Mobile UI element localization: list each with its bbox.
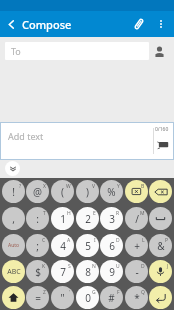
staticText: Compose [22, 17, 72, 32]
button[interactable]: sym [125, 180, 148, 203]
button[interactable]: 0 [76, 286, 99, 309]
button[interactable]: 2 [76, 207, 99, 230]
button[interactable]: More options [151, 14, 171, 34]
staticText: V [92, 183, 96, 190]
staticText: ? [19, 183, 22, 190]
button[interactable]: # [100, 286, 123, 309]
button[interactable]: Back [0, 13, 22, 35]
button[interactable]: 7 [51, 260, 74, 283]
staticText: T [43, 210, 46, 217]
staticText: S [68, 263, 71, 270]
button[interactable]: auto [2, 234, 25, 257]
button[interactable]: ( [51, 180, 74, 203]
staticText: D [116, 237, 120, 244]
button[interactable]: ABC [2, 260, 25, 283]
staticText: ! [12, 185, 15, 199]
button[interactable]: & [149, 234, 172, 257]
staticText: A [67, 237, 71, 244]
button[interactable]: / [125, 207, 148, 230]
staticText: # [108, 291, 115, 305]
staticText: 8 [85, 265, 91, 279]
staticText: 6 [109, 239, 115, 253]
button[interactable]: 4 [51, 234, 74, 257]
staticText: & [157, 239, 165, 253]
staticText: / [135, 212, 139, 226]
button[interactable]: , [2, 207, 25, 230]
button[interactable]: + [125, 234, 148, 257]
staticText: 5 [85, 239, 91, 253]
button[interactable]: Collapse [5, 161, 20, 176]
staticText: " [60, 291, 65, 305]
staticText: 0 [85, 291, 91, 305]
staticText: 9 [109, 265, 115, 279]
staticText: P [165, 237, 169, 244]
staticText: ) [86, 185, 89, 199]
staticText: ABC [7, 267, 21, 277]
button[interactable]: : [26, 207, 49, 230]
button[interactable]: ! [2, 180, 25, 203]
staticText: F [117, 289, 120, 296]
button[interactable]: Attach [127, 12, 151, 36]
staticText: Y [117, 183, 120, 190]
staticText: E [93, 210, 96, 217]
button[interactable]: 3 [100, 207, 123, 230]
button[interactable]: 9 [100, 260, 123, 283]
button[interactable]: space [149, 207, 172, 230]
button[interactable]: % [100, 180, 123, 203]
button[interactable]: = [26, 286, 49, 309]
button[interactable]: 8 [76, 260, 99, 283]
staticText: ; [36, 239, 39, 253]
button[interactable]: - [125, 260, 148, 283]
staticText: $ [35, 265, 41, 279]
staticText: L [142, 237, 145, 244]
staticText: = [35, 291, 41, 305]
button[interactable]: * [125, 286, 148, 309]
staticText: D [141, 263, 145, 270]
staticText: * [134, 291, 140, 305]
staticText: Auto [8, 242, 20, 249]
staticText: H [67, 210, 71, 217]
button[interactable]: Add text [0, 122, 174, 160]
button[interactable]: home [2, 286, 25, 309]
staticText: 3 [109, 212, 115, 226]
staticText: Add text [8, 130, 44, 142]
button[interactable]: 5 [76, 234, 99, 257]
staticText: : [36, 212, 39, 226]
button[interactable]: Choose contact [149, 41, 169, 61]
staticText: Q [141, 289, 145, 296]
staticText: I [94, 237, 96, 244]
button[interactable]: mic [149, 260, 172, 283]
button[interactable]: @ [26, 180, 49, 203]
staticText: N [92, 263, 96, 270]
staticText: J [167, 263, 169, 270]
staticText: U [116, 263, 120, 270]
staticText: 4 [60, 239, 66, 253]
button[interactable]: " [51, 286, 74, 309]
button[interactable]: ; [26, 234, 49, 257]
button[interactable]: 1 [51, 207, 74, 230]
staticText: K [42, 263, 46, 270]
staticText: 7 [60, 265, 66, 279]
staticText: + [134, 239, 140, 253]
staticText: 0/160 [155, 126, 169, 133]
button[interactable]: del [149, 180, 172, 203]
staticText: - [135, 265, 139, 279]
button[interactable]: $ [26, 260, 49, 283]
staticText: 1 [60, 212, 66, 226]
button[interactable]: 6 [100, 234, 123, 257]
staticText: Z [43, 289, 46, 296]
staticText: X [43, 183, 46, 190]
button[interactable]: enter [149, 286, 172, 309]
staticText: ' [69, 289, 71, 296]
staticText: B [141, 183, 145, 190]
staticText: R [116, 210, 120, 217]
staticText: 2 [85, 212, 91, 226]
staticText: To [11, 45, 21, 57]
button[interactable]: ) [76, 180, 99, 203]
button[interactable]: To [5, 42, 149, 60]
staticText: % [107, 185, 116, 199]
staticText: C [42, 237, 46, 244]
staticText: @ [33, 185, 42, 199]
staticText: W [66, 183, 71, 190]
staticText: M [140, 210, 145, 217]
